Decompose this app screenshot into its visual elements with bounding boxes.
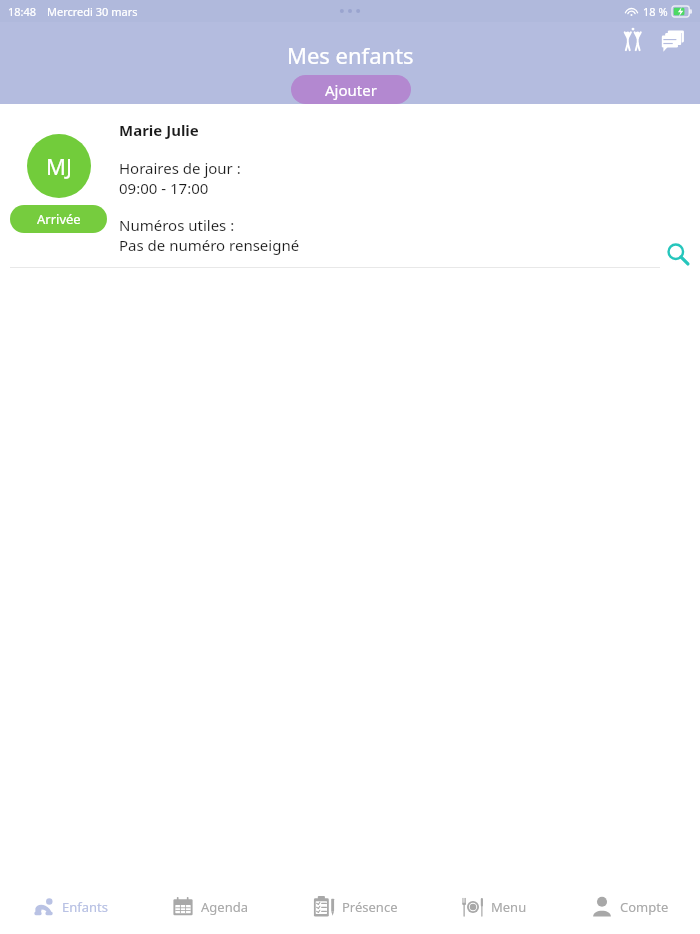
staticText: Compte (620, 898, 669, 916)
staticText: 18 % (643, 4, 668, 19)
button[interactable]: Compte (585, 888, 673, 926)
staticText: Menu (491, 898, 527, 916)
button[interactable]: Agenda (166, 888, 252, 926)
staticText: Enfants (62, 898, 108, 916)
staticText: 18:48 (8, 4, 37, 19)
staticText: Agenda (201, 898, 248, 916)
staticText: Arrivée (37, 210, 81, 228)
staticText: Présence (342, 898, 398, 916)
button[interactable]: Rechercher (658, 234, 698, 274)
button[interactable]: MJ (27, 134, 91, 198)
staticText: 09:00 - 17:00 (119, 178, 209, 198)
button[interactable]: Menu (456, 888, 531, 926)
staticText: Mes enfants (287, 40, 414, 70)
staticText: Ajouter (325, 80, 377, 100)
button[interactable]: Ajouter (291, 75, 411, 104)
staticText: Horaires de jour : (119, 158, 241, 178)
staticText: Numéros utiles : (119, 215, 235, 235)
staticText: Pas de numéro renseigné (119, 235, 300, 255)
button[interactable]: Présence (307, 888, 402, 926)
button[interactable]: Messages (656, 22, 690, 56)
button[interactable]: Enfants (27, 888, 112, 926)
button[interactable]: Arrivée (10, 205, 107, 233)
staticText: MJ (46, 151, 72, 181)
staticText: Mercredi 30 mars (47, 4, 138, 19)
button[interactable]: Activités (616, 22, 650, 56)
staticText: Marie Julie (119, 120, 199, 140)
